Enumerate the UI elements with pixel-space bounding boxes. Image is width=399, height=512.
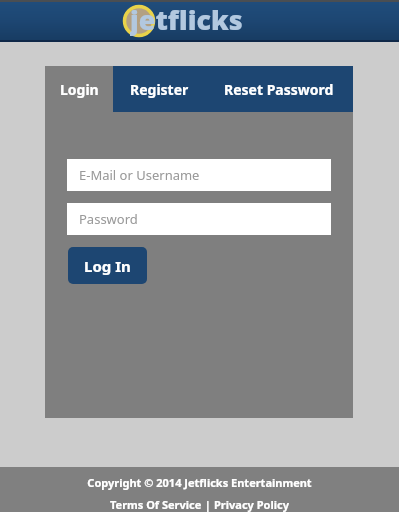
staticText: Copyright © 2014 Jetflicks Entertainment bbox=[87, 475, 312, 490]
button[interactable]: Password bbox=[67, 203, 331, 235]
staticText: Register bbox=[130, 80, 189, 99]
staticText: Password bbox=[79, 210, 138, 228]
staticText: Privacy Policy bbox=[214, 497, 289, 512]
button[interactable]: Reset Password bbox=[205, 66, 353, 112]
button[interactable]: Privacy Policy bbox=[214, 497, 289, 512]
staticText: Reset Password bbox=[224, 80, 334, 99]
button[interactable]: Register bbox=[113, 66, 205, 112]
other: Jetflicks logo bbox=[120, 3, 280, 39]
staticText: jetflicks bbox=[130, 1, 243, 37]
staticText: | bbox=[202, 497, 214, 512]
staticText: Login bbox=[60, 80, 99, 99]
button[interactable]: Login bbox=[45, 66, 113, 112]
staticText: E-Mail or Username bbox=[79, 166, 200, 184]
staticText: Terms Of Service bbox=[110, 497, 202, 512]
button[interactable]: Log In bbox=[68, 247, 147, 284]
staticText: Log In bbox=[84, 256, 131, 276]
button[interactable]: E-Mail or Username bbox=[67, 159, 331, 191]
button[interactable]: Terms Of Service bbox=[110, 497, 202, 512]
